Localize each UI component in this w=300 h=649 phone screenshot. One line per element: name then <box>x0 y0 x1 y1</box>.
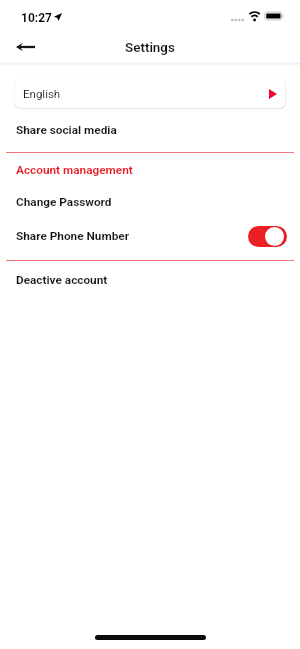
button[interactable]: Account management <box>0 155 300 185</box>
button[interactable]: Deactive account <box>0 265 300 295</box>
button[interactable]: Share Phone Number <box>0 221 300 251</box>
button[interactable]: Share social media <box>0 115 300 145</box>
staticText: Deactive account <box>16 273 108 287</box>
staticText: 10:27 <box>21 11 52 25</box>
button[interactable]: Share Phone Number toggle <box>248 226 287 247</box>
button[interactable]: English <box>15 79 285 108</box>
staticText: Settings <box>125 40 175 56</box>
staticText: Account management <box>16 163 133 177</box>
staticText: Share social media <box>16 123 117 137</box>
staticText: English <box>23 87 61 100</box>
staticText: Change Password <box>16 195 112 209</box>
button[interactable]: Back <box>9 31 41 63</box>
button[interactable]: Change Password <box>0 187 300 217</box>
staticText: Share Phone Number <box>16 229 129 243</box>
